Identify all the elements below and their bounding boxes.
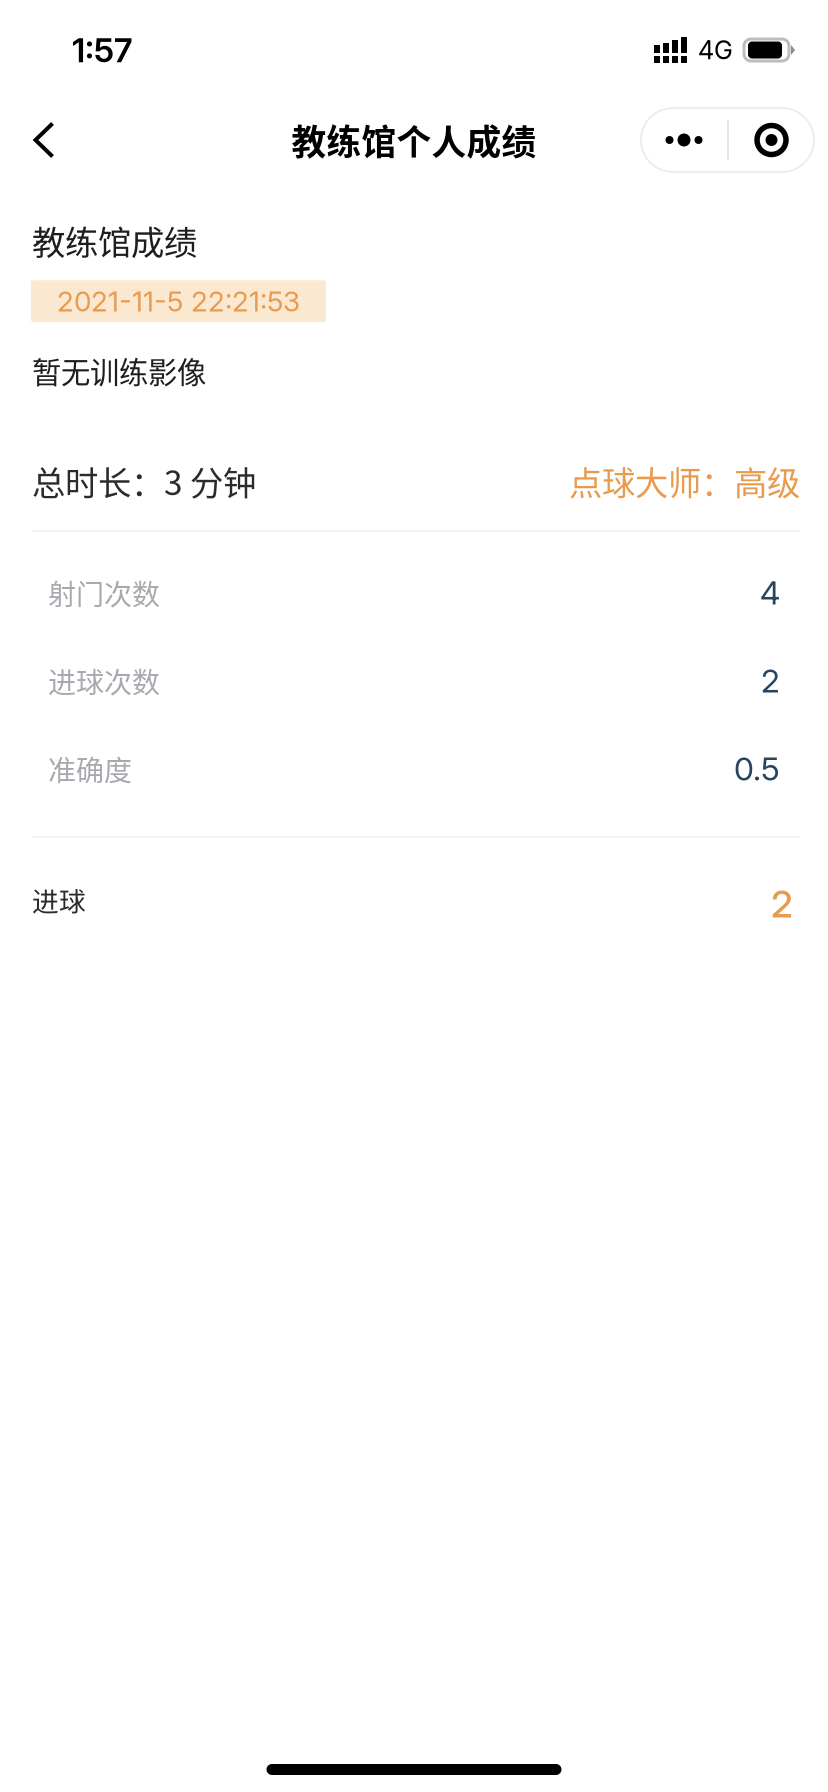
button[interactable]: Close (729, 108, 814, 172)
staticText: 进球次数 (48, 661, 160, 701)
staticText: 暂无训练影像 (32, 349, 206, 392)
staticText: 进球 (32, 881, 86, 919)
staticText: 4G (698, 35, 733, 65)
button[interactable]: Back (8, 98, 80, 182)
button[interactable]: More (641, 108, 727, 172)
staticText: 4 (760, 573, 780, 612)
staticText: 1:57 (72, 30, 132, 70)
staticText: 教练馆成绩 (32, 216, 197, 264)
staticText: 0.5 (734, 749, 780, 788)
staticText: 射门次数 (48, 573, 160, 613)
staticText: 2 (771, 881, 793, 926)
staticText: 教练馆个人成绩 (291, 115, 536, 165)
staticText: 点球大师：高级 (569, 457, 800, 505)
staticText: 2021-11-5 22:21:53 (57, 284, 300, 318)
staticText: 2 (761, 661, 780, 700)
staticText: 准确度 (48, 749, 132, 789)
staticText: 总时长：3 分钟 (32, 457, 256, 505)
